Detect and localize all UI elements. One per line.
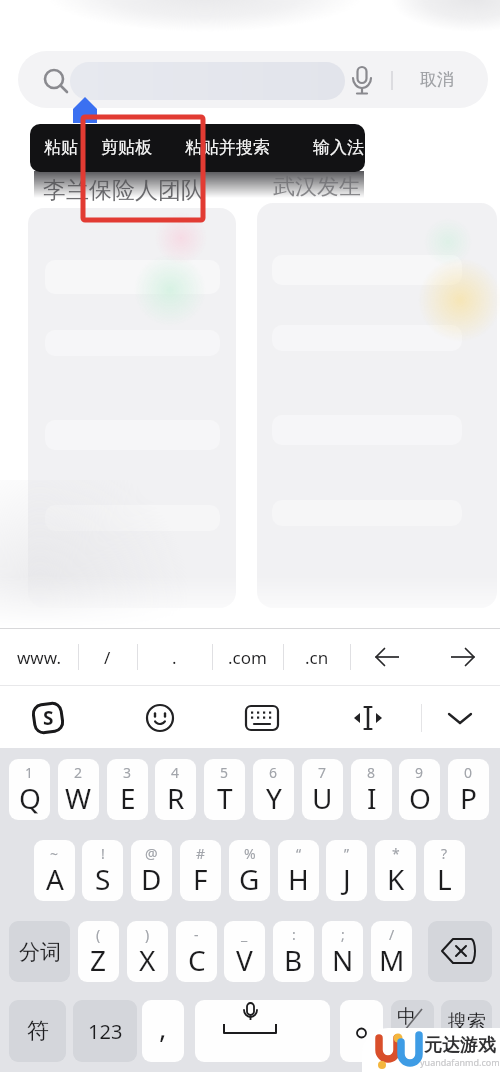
- staticText: H: [288, 860, 309, 898]
- button[interactable]: 6: [253, 759, 294, 820]
- button[interactable]: 2: [58, 759, 99, 820]
- button[interactable]: [340, 1000, 383, 1062]
- staticText: 4: [171, 763, 180, 782]
- staticText: /: [104, 646, 111, 669]
- staticText: P: [460, 779, 477, 817]
- button[interactable]: 1: [9, 759, 50, 820]
- button[interactable]: [9, 1000, 66, 1062]
- button[interactable]: 输入法: [310, 124, 365, 170]
- staticText: /: [389, 925, 395, 944]
- button[interactable]: S: [30, 700, 66, 736]
- staticText: -: [194, 925, 199, 944]
- staticText: T: [217, 779, 233, 817]
- button[interactable]: 剪贴板: [98, 124, 154, 170]
- staticText: 元达游戏: [424, 1034, 496, 1054]
- staticText: S: [95, 860, 111, 898]
- staticText: 123: [88, 1018, 123, 1045]
- button[interactable]: [142, 1000, 184, 1062]
- button[interactable]: ?: [424, 840, 465, 901]
- button[interactable]: -: [176, 921, 217, 982]
- button[interactable]: .cn: [283, 629, 350, 685]
- staticText: 8: [367, 763, 376, 782]
- button[interactable]: /: [371, 921, 412, 982]
- button[interactable]: “: [278, 840, 319, 901]
- staticText: 武汉发生: [273, 173, 361, 199]
- staticText: 搜索: [448, 1010, 486, 1034]
- staticText: L: [437, 860, 452, 898]
- button[interactable]: /: [78, 629, 137, 685]
- staticText: B: [284, 941, 303, 979]
- button[interactable]: *: [375, 840, 416, 901]
- staticText: 2: [74, 763, 83, 782]
- staticText: *: [392, 844, 400, 863]
- staticText: 3: [123, 763, 132, 782]
- button[interactable]: [9, 921, 70, 982]
- button[interactable]: 4: [155, 759, 196, 820]
- button[interactable]: 粘贴: [42, 124, 80, 170]
- button[interactable]: %: [229, 840, 270, 901]
- staticText: 6: [269, 763, 278, 782]
- staticText: ?: [441, 844, 448, 863]
- staticText: 输入法: [313, 137, 364, 158]
- button[interactable]: [425, 628, 500, 685]
- button[interactable]: :: [273, 921, 314, 982]
- button[interactable]: ): [127, 921, 168, 982]
- button[interactable]: #: [180, 840, 221, 901]
- button[interactable]: 0: [448, 759, 489, 820]
- staticText: 粘贴: [44, 137, 78, 158]
- button[interactable]: ;: [322, 921, 363, 982]
- button[interactable]: .com: [212, 629, 283, 685]
- button[interactable]: _: [224, 921, 265, 982]
- staticText: N: [332, 941, 354, 979]
- button[interactable]: www.: [0, 629, 78, 685]
- button[interactable]: [145, 703, 175, 733]
- staticText: O: [409, 779, 431, 817]
- staticText: D: [141, 860, 162, 898]
- staticText: ~: [50, 844, 59, 863]
- button[interactable]: [195, 1000, 330, 1062]
- button[interactable]: 9: [399, 759, 440, 820]
- button[interactable]: (: [78, 921, 119, 982]
- staticText: X: [139, 941, 156, 979]
- staticText: ”: [344, 844, 350, 863]
- staticText: 中: [397, 1005, 416, 1029]
- staticText: (: [96, 925, 101, 944]
- staticText: R: [167, 779, 185, 817]
- button[interactable]: [447, 706, 473, 730]
- staticText: 李兰保险人团队: [43, 176, 204, 204]
- button[interactable]: !: [82, 840, 123, 901]
- button[interactable]: [245, 705, 279, 731]
- button[interactable]: 8: [351, 759, 392, 820]
- button[interactable]: [428, 921, 492, 982]
- button[interactable]: ”: [326, 840, 367, 901]
- button[interactable]: [352, 704, 384, 732]
- staticText: ): [145, 925, 150, 944]
- button[interactable]: 5: [204, 759, 245, 820]
- button[interactable]: .: [137, 629, 212, 685]
- staticText: :: [292, 925, 296, 944]
- staticText: 取消: [420, 69, 454, 90]
- button[interactable]: @: [131, 840, 172, 901]
- staticText: 符: [27, 1017, 49, 1045]
- button[interactable]: [391, 1000, 434, 1062]
- staticText: M: [379, 941, 405, 979]
- staticText: 1: [25, 763, 34, 782]
- button[interactable]: 粘贴并搜索: [180, 124, 274, 170]
- staticText: I: [367, 779, 377, 817]
- button[interactable]: [350, 628, 425, 685]
- button[interactable]: 取消: [402, 51, 472, 108]
- staticText: ;: [341, 925, 345, 944]
- staticText: 7: [318, 763, 327, 782]
- button[interactable]: [73, 1000, 137, 1062]
- staticText: #: [196, 844, 206, 863]
- staticText: 9: [415, 763, 424, 782]
- button[interactable]: [441, 1000, 492, 1062]
- staticText: S: [43, 705, 54, 731]
- button[interactable]: 3: [107, 759, 148, 820]
- staticText: Z: [90, 941, 107, 979]
- button[interactable]: ~: [34, 840, 75, 901]
- button[interactable]: 7: [302, 759, 343, 820]
- staticText: Q: [19, 779, 41, 817]
- staticText: .com: [228, 646, 267, 669]
- staticText: Y: [266, 779, 282, 817]
